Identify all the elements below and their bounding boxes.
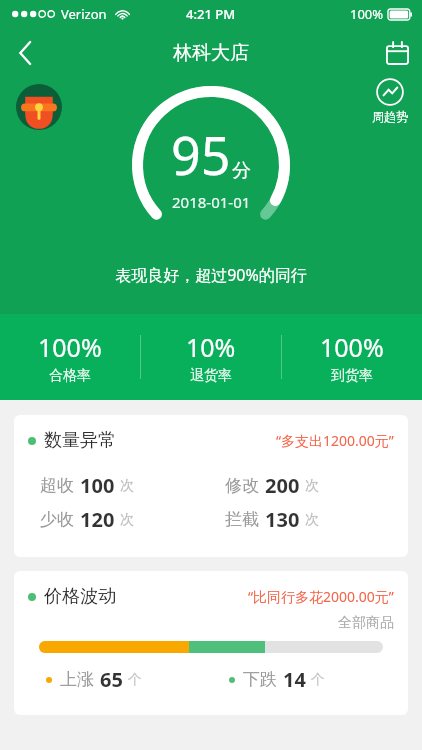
staticText: 100	[80, 472, 115, 499]
staticText: 2018-01-01	[172, 192, 251, 212]
staticText: 分	[232, 159, 251, 183]
button[interactable]: Store avatar	[16, 84, 62, 130]
staticText: 65	[100, 666, 123, 693]
staticText: 周趋势	[372, 109, 408, 124]
button[interactable]: 修改	[225, 472, 394, 499]
staticText: 林科大店	[173, 41, 249, 65]
staticText: “比同行多花2000.00元”	[248, 587, 394, 606]
staticText: 10%	[186, 330, 236, 364]
staticText: 到货率	[331, 367, 373, 385]
button[interactable]: 超收	[40, 472, 211, 499]
staticText: 数量异常	[44, 429, 116, 452]
staticText: 个	[128, 671, 142, 689]
staticText: 次	[120, 477, 134, 495]
staticText: 合格率	[49, 367, 91, 385]
staticText: 次	[305, 511, 319, 529]
staticText: 超收	[40, 475, 74, 496]
staticText: 95	[171, 119, 231, 190]
staticText: 上涨	[60, 669, 94, 690]
button[interactable]: 数量异常	[14, 415, 408, 557]
staticText: 次	[120, 511, 134, 529]
staticText: Verizon	[61, 5, 107, 23]
button[interactable]: 下跌	[229, 666, 394, 693]
button[interactable]: Weekly trend	[372, 78, 408, 124]
staticText: 14	[283, 666, 306, 693]
button[interactable]: 少收	[40, 506, 211, 533]
staticText: 100%	[350, 5, 384, 23]
staticText: 价格波动	[44, 585, 116, 608]
staticText: 下跌	[243, 669, 277, 690]
staticText: 修改	[225, 475, 259, 496]
staticText: 次	[305, 477, 319, 495]
button[interactable]: 100%	[0, 314, 140, 400]
staticText: 退货率	[190, 367, 232, 385]
button[interactable]: 上涨	[46, 666, 211, 693]
staticText: 130	[265, 506, 300, 533]
button[interactable]: Back	[0, 28, 50, 78]
button[interactable]: 价格波动	[14, 571, 408, 715]
button[interactable]: 10%	[141, 314, 281, 400]
staticText: 100%	[38, 330, 102, 364]
button[interactable]: 拦截	[225, 506, 394, 533]
staticText: 拦截	[225, 509, 259, 530]
staticText: “多支出1200.00元”	[276, 431, 394, 450]
staticText: 100%	[320, 330, 384, 364]
staticText: 表现良好，超过90%的同行	[115, 264, 307, 286]
staticText: 120	[80, 506, 115, 533]
button[interactable]: Calendar	[372, 28, 422, 78]
button[interactable]: 100%	[282, 314, 422, 400]
staticText: 200	[265, 472, 300, 499]
staticText: 少收	[40, 509, 74, 530]
staticText: 个	[311, 671, 325, 689]
staticText: 全部商品	[28, 614, 394, 632]
staticText: 4:21 PM	[186, 5, 236, 23]
